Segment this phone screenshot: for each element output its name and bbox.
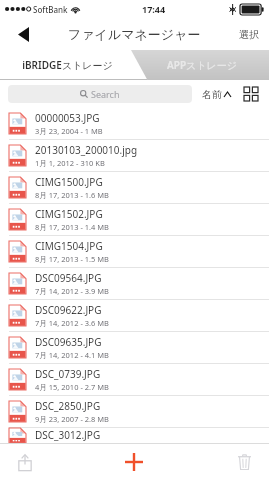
staticText: 1月 1, 2012 - 310 KB [35, 158, 105, 168]
button[interactable]: Grid view [241, 84, 261, 104]
staticText: 8月 17, 2013 - 1.4 MB [35, 222, 109, 232]
staticText: DSC09622.JPG [35, 303, 102, 317]
staticText: 7月 14, 2012 - 3.9 MB [35, 286, 109, 296]
button[interactable]: DSC_2850.JPG [0, 396, 269, 428]
staticText: CIMG1500.JPG [35, 175, 103, 189]
staticText: 8月 17, 2013 - 1.6 MB [35, 190, 109, 200]
button[interactable]: DSC09622.JPG [0, 300, 269, 332]
button[interactable]: Search [8, 85, 192, 103]
staticText: Search [91, 88, 120, 100]
button[interactable]: 選択 [235, 22, 263, 47]
staticText: CIMG1502.JPG [35, 207, 103, 221]
button[interactable]: Back [8, 19, 38, 49]
button[interactable]: APPストレージ [134, 50, 269, 80]
staticText: DSC09564.JPG [35, 271, 102, 285]
button[interactable]: DSC09564.JPG [0, 268, 269, 300]
staticText: SoftBank [33, 4, 68, 15]
staticText: DSC_0739.JPG [35, 367, 101, 381]
button[interactable]: DSC_3012.JPG [0, 428, 269, 443]
staticText: 7月 14, 2012 - 4.1 MB [35, 350, 109, 360]
staticText: 9月 23, 2007 - 2.8 MB [35, 414, 109, 424]
staticText: 選択 [239, 28, 259, 41]
staticText: CIMG1504.JPG [35, 239, 103, 253]
staticText: 名前 [202, 88, 222, 101]
staticText: 7月 14, 2012 - 3.6 MB [35, 318, 109, 328]
staticText: iBRIDGEストレージ [22, 58, 113, 72]
button[interactable]: CIMG1502.JPG [0, 204, 269, 236]
button[interactable]: 名前 [200, 84, 233, 105]
staticText: ファイルマネージャー [68, 26, 201, 42]
staticText: 00000053.JPG [35, 111, 100, 125]
staticText: 4月 15, 2010 - 2.7 MB [35, 382, 109, 392]
staticText: 3月 23, 2004 - 1 MB [35, 126, 103, 136]
staticText: 20130103_200010.jpg [35, 143, 138, 157]
staticText: 17:44 [142, 3, 166, 15]
button[interactable]: 20130103_200010.jpg [0, 140, 269, 172]
staticText: DSC_3012.JPG [35, 428, 101, 442]
button[interactable]: 00000053.JPG [0, 108, 269, 140]
button[interactable]: CIMG1500.JPG [0, 172, 269, 204]
staticText: DSC09635.JPG [35, 335, 102, 349]
button[interactable]: Share [10, 447, 40, 477]
button[interactable]: Add [117, 445, 151, 479]
staticText: APPストレージ [167, 58, 237, 72]
button[interactable]: iBRIDGEストレージ [0, 50, 134, 80]
staticText: DSC_2850.JPG [35, 399, 101, 413]
button[interactable]: Delete [229, 447, 259, 477]
staticText: 8月 17, 2013 - 1.5 MB [35, 254, 109, 264]
button[interactable]: DSC09635.JPG [0, 332, 269, 364]
button[interactable]: DSC_0739.JPG [0, 364, 269, 396]
button[interactable]: CIMG1504.JPG [0, 236, 269, 268]
